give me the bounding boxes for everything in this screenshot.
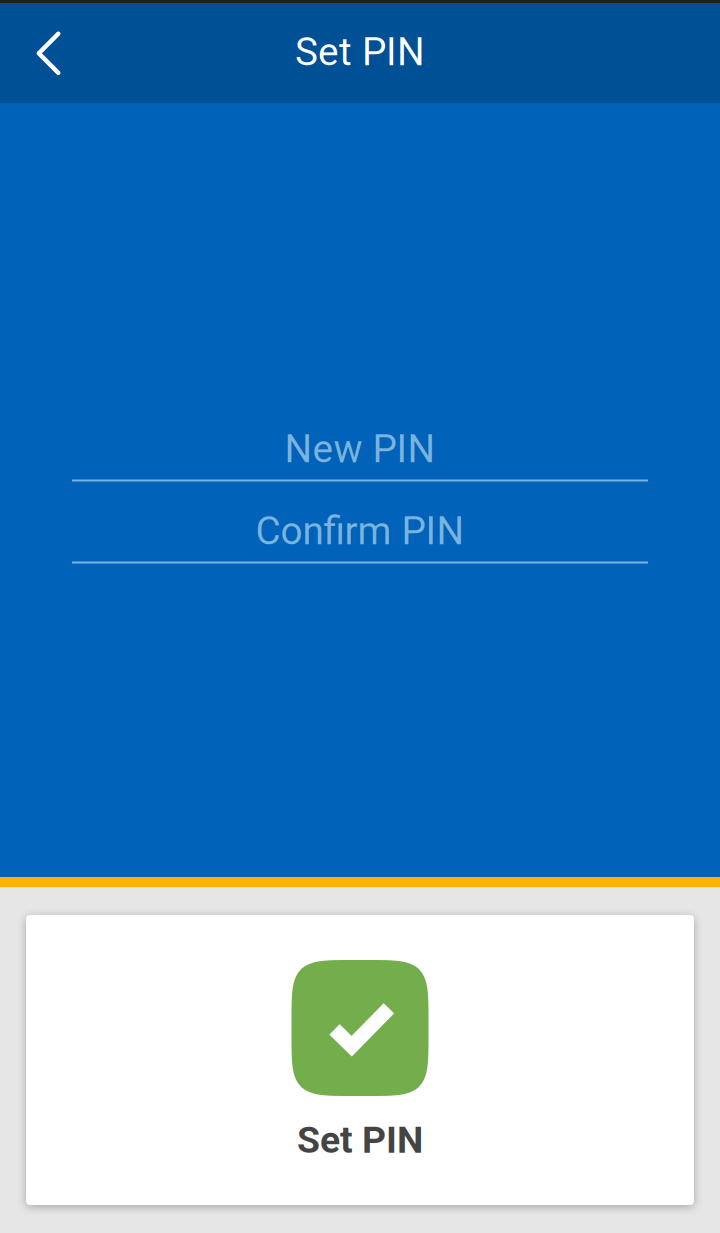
button[interactable]: Set PIN (26, 915, 694, 1205)
staticText: New PIN (284, 426, 435, 472)
staticText: Confirm PIN (255, 508, 464, 554)
button[interactable]: Back (0, 3, 97, 103)
staticText: Set PIN (295, 29, 425, 75)
staticText: Set PIN (297, 1118, 423, 1162)
